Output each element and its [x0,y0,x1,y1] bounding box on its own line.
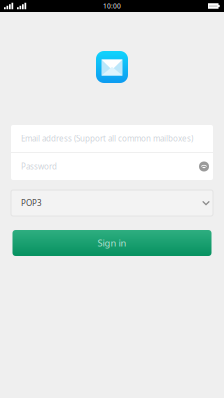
button[interactable]: Email address (Support all common mailbo… [11,125,213,152]
staticText: Password [21,161,57,172]
button[interactable]: Password [11,153,213,180]
staticText: Sign in [97,237,126,249]
staticText: 10:00 [103,2,121,10]
button[interactable]: POP3 [11,190,213,216]
staticText: POP3 [21,198,42,208]
staticText: Email address (Support all common mailbo… [21,133,193,144]
button[interactable]: Sign in [12,230,211,256]
